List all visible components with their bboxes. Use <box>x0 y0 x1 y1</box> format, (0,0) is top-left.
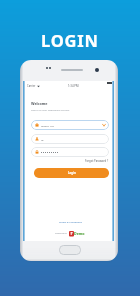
staticText: Sign in to your Registered account <box>31 108 70 111</box>
button[interactable]: Inquiry UAT <box>31 120 109 130</box>
staticText: Carrier <box>27 84 36 88</box>
staticText: 1:34 PM <box>68 84 79 88</box>
staticText: Powered by <box>55 232 67 235</box>
staticText: ID <box>41 138 44 141</box>
staticText: Demo <box>74 231 85 236</box>
button[interactable]: Login <box>34 168 109 178</box>
staticText: Inquiry UAT <box>41 124 55 127</box>
button[interactable]: Terms & Conditions <box>59 220 82 223</box>
staticText: Welcome <box>31 101 48 106</box>
button[interactable] <box>31 147 109 157</box>
button[interactable]: Forgot Password ? <box>85 159 109 163</box>
staticText: LOGIN <box>41 29 99 51</box>
button[interactable]: ID <box>31 134 109 144</box>
staticText: Login <box>68 171 76 175</box>
button[interactable]: Home <box>59 245 81 255</box>
